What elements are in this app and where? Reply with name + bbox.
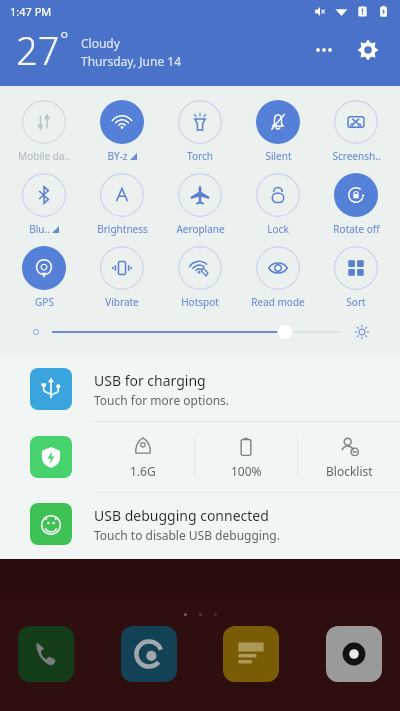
staticText: 1.6G [130, 463, 156, 479]
button[interactable]: More options [306, 32, 342, 68]
button[interactable]: App [326, 626, 382, 682]
staticText: USB debugging connected [94, 506, 269, 525]
staticText: Touch for more options. [94, 392, 230, 408]
staticText: Aeroplane [176, 222, 225, 236]
button[interactable]: Vibrate [84, 242, 160, 315]
button[interactable]: 100% [195, 422, 297, 492]
button[interactable]: Read mode [240, 242, 316, 315]
button[interactable]: Mobile da.. [6, 96, 82, 169]
staticText: USB for charging [94, 371, 206, 390]
button[interactable]: GPS [6, 242, 82, 315]
staticText: 27 [16, 24, 60, 76]
button[interactable]: Brightness slider [0, 315, 400, 349]
button[interactable]: 1.6G [92, 422, 194, 492]
button[interactable]: Brightness [84, 169, 160, 242]
staticText: Lock [267, 222, 289, 236]
staticText: Hotspot [181, 295, 219, 309]
staticText: BY-z [107, 149, 128, 163]
staticText: ° [60, 26, 69, 53]
button[interactable]: Torch [162, 96, 238, 169]
staticText: Cloudy [81, 35, 120, 51]
staticText: Screensh.. [332, 149, 381, 163]
staticText: Blu.. [29, 222, 50, 236]
staticText: Touch to disable USB debugging. [94, 527, 280, 543]
button[interactable]: Rotate off [318, 169, 394, 242]
staticText: Rotate off [333, 222, 380, 236]
staticText: Sort [346, 295, 366, 309]
staticText: Silent [265, 149, 292, 163]
staticText: Torch [187, 149, 213, 163]
staticText: Vibrate [105, 295, 139, 309]
button[interactable]: Blu.. [6, 169, 82, 242]
staticText: 1:47 PM [10, 4, 52, 19]
staticText: Brightness [97, 222, 148, 236]
button[interactable]: USB debugging connected [0, 493, 400, 555]
staticText: Blocklist [326, 463, 373, 479]
button[interactable]: Aeroplane [162, 169, 238, 242]
button[interactable]: Sort [318, 242, 394, 315]
button[interactable]: Settings [348, 30, 388, 70]
button[interactable]: BY-z [84, 96, 160, 169]
staticText: Thursday, June 14 [81, 53, 182, 69]
staticText: 100% [231, 463, 262, 479]
button[interactable]: Blocklist [298, 422, 400, 492]
button[interactable]: Screensh.. [318, 96, 394, 169]
button[interactable]: Security [30, 436, 72, 478]
button[interactable]: App [121, 626, 177, 682]
button[interactable]: Lock [240, 169, 316, 242]
button[interactable]: USB for charging [0, 357, 400, 421]
staticText: Mobile da.. [18, 149, 70, 163]
button[interactable]: App [223, 626, 279, 682]
staticText: Read mode [251, 295, 305, 309]
staticText: GPS [35, 295, 54, 309]
button[interactable]: Hotspot [162, 242, 238, 315]
button[interactable]: Silent [240, 96, 316, 169]
button[interactable]: App [18, 626, 74, 682]
